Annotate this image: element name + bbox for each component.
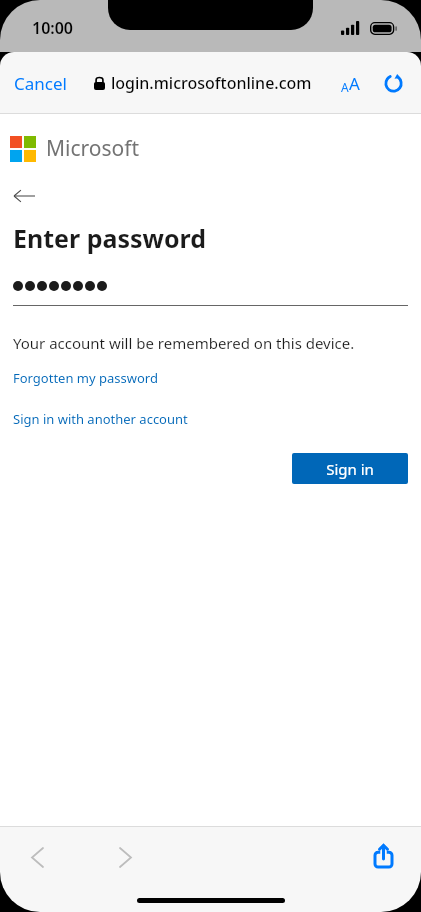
button[interactable]: Reload: [378, 68, 409, 99]
staticText: Sign in: [326, 459, 374, 479]
staticText: Your account will be remembered on this …: [13, 333, 355, 353]
button[interactable]: Cancel: [0, 64, 77, 103]
staticText: A: [349, 72, 360, 95]
staticText: Enter password: [13, 221, 207, 255]
staticText: 10:00: [32, 17, 74, 39]
button[interactable]: Text size: [337, 66, 364, 101]
button[interactable]: Back: [8, 183, 41, 209]
button[interactable]: Sign in with another account: [13, 410, 188, 428]
button[interactable]: Back: [24, 840, 51, 875]
button[interactable]: Sign in: [292, 453, 408, 484]
button[interactable]: Share: [368, 838, 399, 874]
staticText: Microsoft: [46, 134, 140, 163]
button[interactable]: Forgotten my password: [13, 369, 158, 387]
button[interactable]: Forward: [112, 840, 139, 875]
staticText: login.microsoftonline.com: [111, 72, 312, 94]
staticText: A: [341, 79, 349, 95]
